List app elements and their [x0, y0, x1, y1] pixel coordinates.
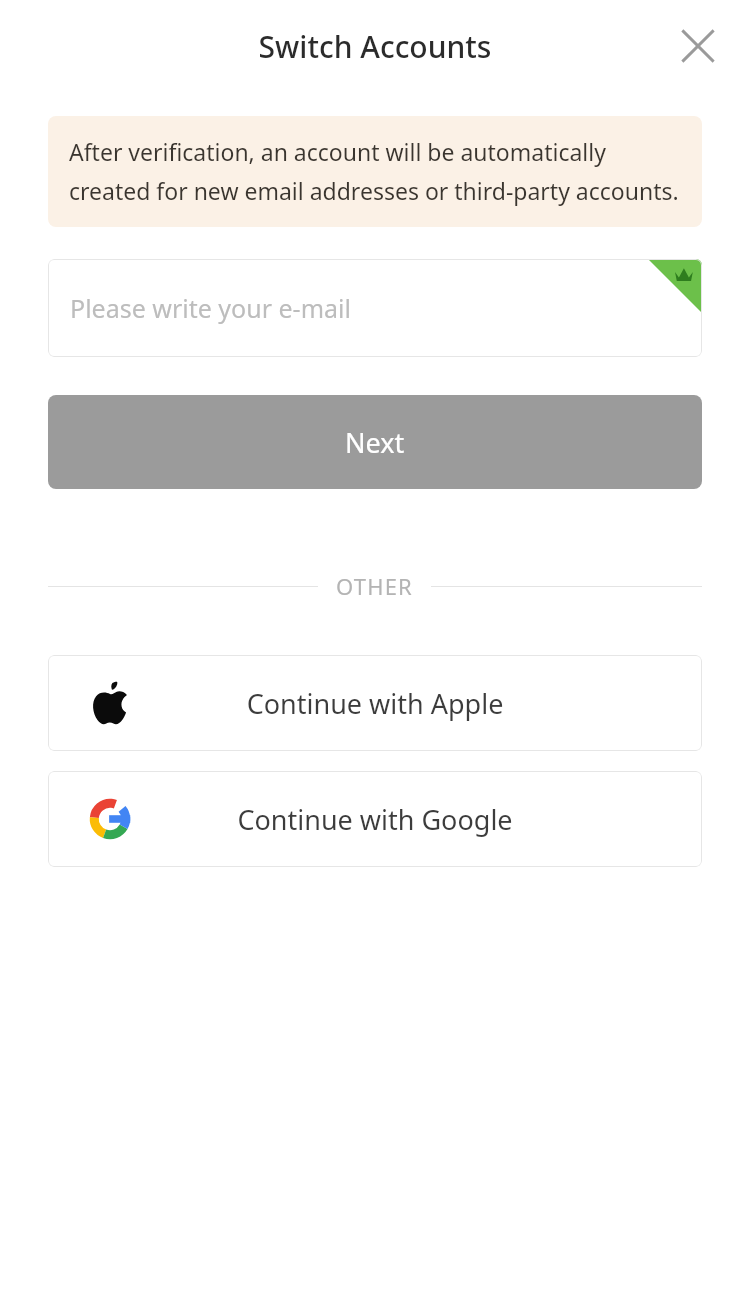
staticText: After verification, an account will be a… [69, 136, 681, 207]
button[interactable]: Next [48, 395, 702, 489]
button[interactable]: Please write your e-mail [48, 259, 702, 357]
staticText: Please write your e-mail [70, 291, 351, 325]
staticText: Next [345, 424, 405, 461]
staticText: Continue with Google [48, 801, 702, 838]
button[interactable]: Continue with Google [48, 771, 702, 867]
staticText: Continue with Apple [48, 685, 702, 722]
staticText: OTHER [336, 571, 413, 601]
button[interactable]: Continue with Apple [48, 655, 702, 751]
staticText: Switch Accounts [0, 26, 750, 67]
button[interactable]: Close [670, 18, 726, 74]
